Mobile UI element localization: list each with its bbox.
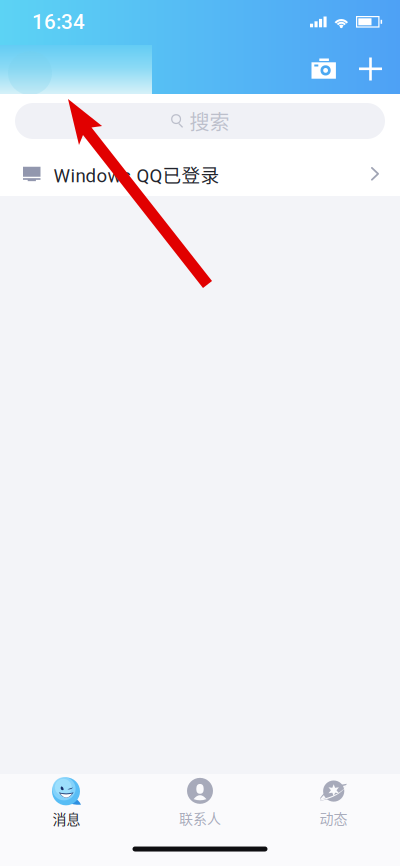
button[interactable]: 搜索 (15, 103, 385, 139)
button[interactable]: Windows QQ已登录 (0, 152, 400, 196)
button[interactable]: 动态 (267, 776, 400, 830)
button[interactable]: 联系人 (133, 776, 267, 830)
staticText: 动态 (319, 808, 347, 828)
button[interactable]: 消息 (0, 776, 133, 830)
staticText: Windows QQ已登录 (53, 160, 219, 187)
staticText: 消息 (52, 808, 80, 829)
button[interactable]: Camera (300, 46, 348, 92)
staticText: 搜索 (189, 106, 229, 135)
staticText: 联系人 (179, 808, 221, 828)
staticText: 16:34 (32, 10, 85, 34)
button[interactable]: Add (348, 46, 393, 92)
